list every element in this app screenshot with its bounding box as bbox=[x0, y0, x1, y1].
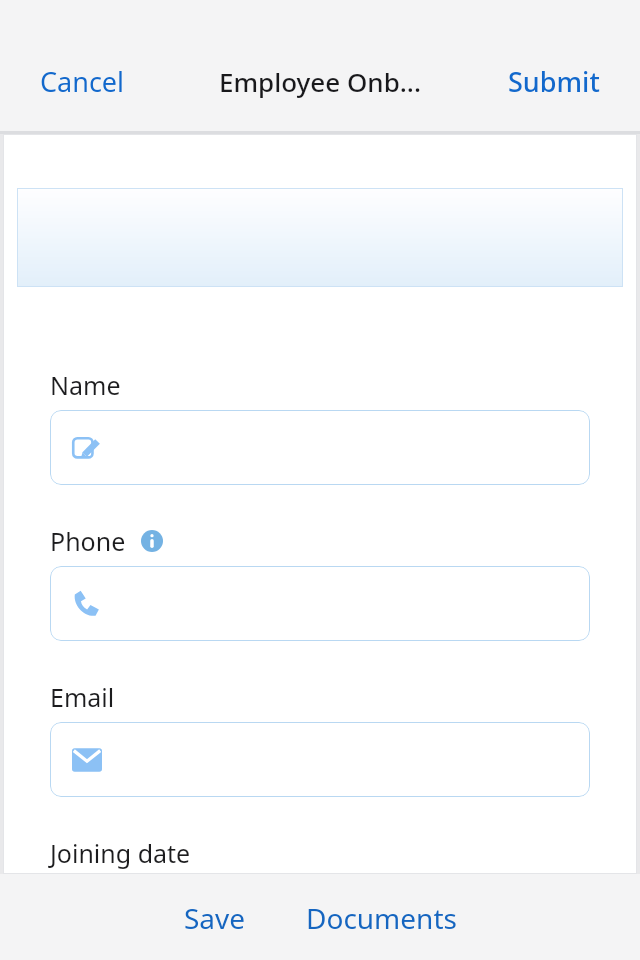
button[interactable]: More information bbox=[141, 530, 163, 552]
staticText: Employee Onb... bbox=[219, 64, 421, 99]
staticText: Joining date bbox=[50, 836, 191, 870]
button[interactable] bbox=[50, 410, 590, 485]
button[interactable]: Documents bbox=[300, 896, 463, 940]
staticText: Cancel bbox=[40, 63, 125, 100]
button[interactable] bbox=[50, 566, 590, 641]
button[interactable]: Submit bbox=[502, 60, 606, 103]
button[interactable]: Cancel bbox=[34, 60, 131, 103]
button[interactable] bbox=[50, 722, 590, 797]
button[interactable]: Save bbox=[178, 896, 252, 940]
staticText: Name bbox=[50, 368, 121, 402]
staticText: Documents bbox=[306, 899, 457, 937]
staticText: Submit bbox=[508, 63, 600, 100]
staticText: Phone bbox=[50, 524, 126, 558]
staticText: Email bbox=[50, 680, 115, 714]
staticText: Save bbox=[184, 899, 246, 937]
